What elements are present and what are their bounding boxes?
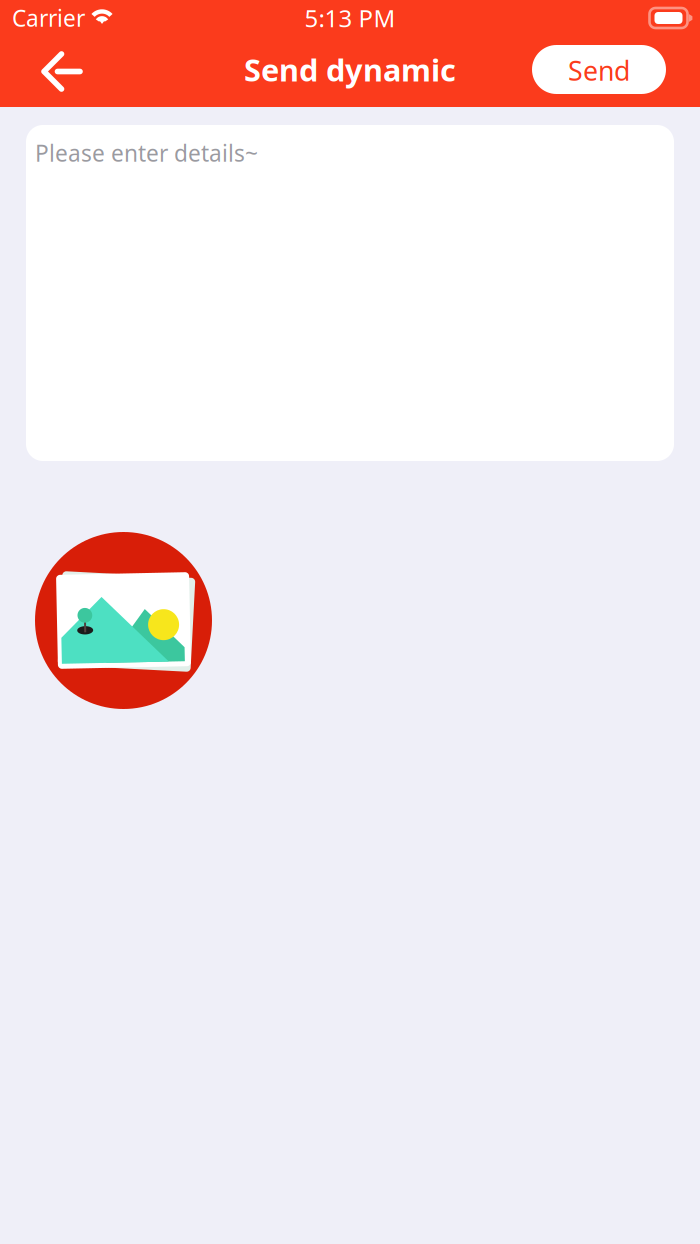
staticText: Carrier <box>12 3 85 33</box>
staticText: 5:13 PM <box>304 2 395 34</box>
button[interactable]: Back <box>0 37 124 105</box>
staticText: Please enter details~ <box>35 138 258 168</box>
staticText: Send dynamic <box>244 49 456 90</box>
button[interactable]: Add photo <box>35 532 212 709</box>
button[interactable]: Send <box>532 47 666 96</box>
button[interactable]: Please enter details~ <box>26 125 674 461</box>
staticText: Send <box>568 53 630 88</box>
